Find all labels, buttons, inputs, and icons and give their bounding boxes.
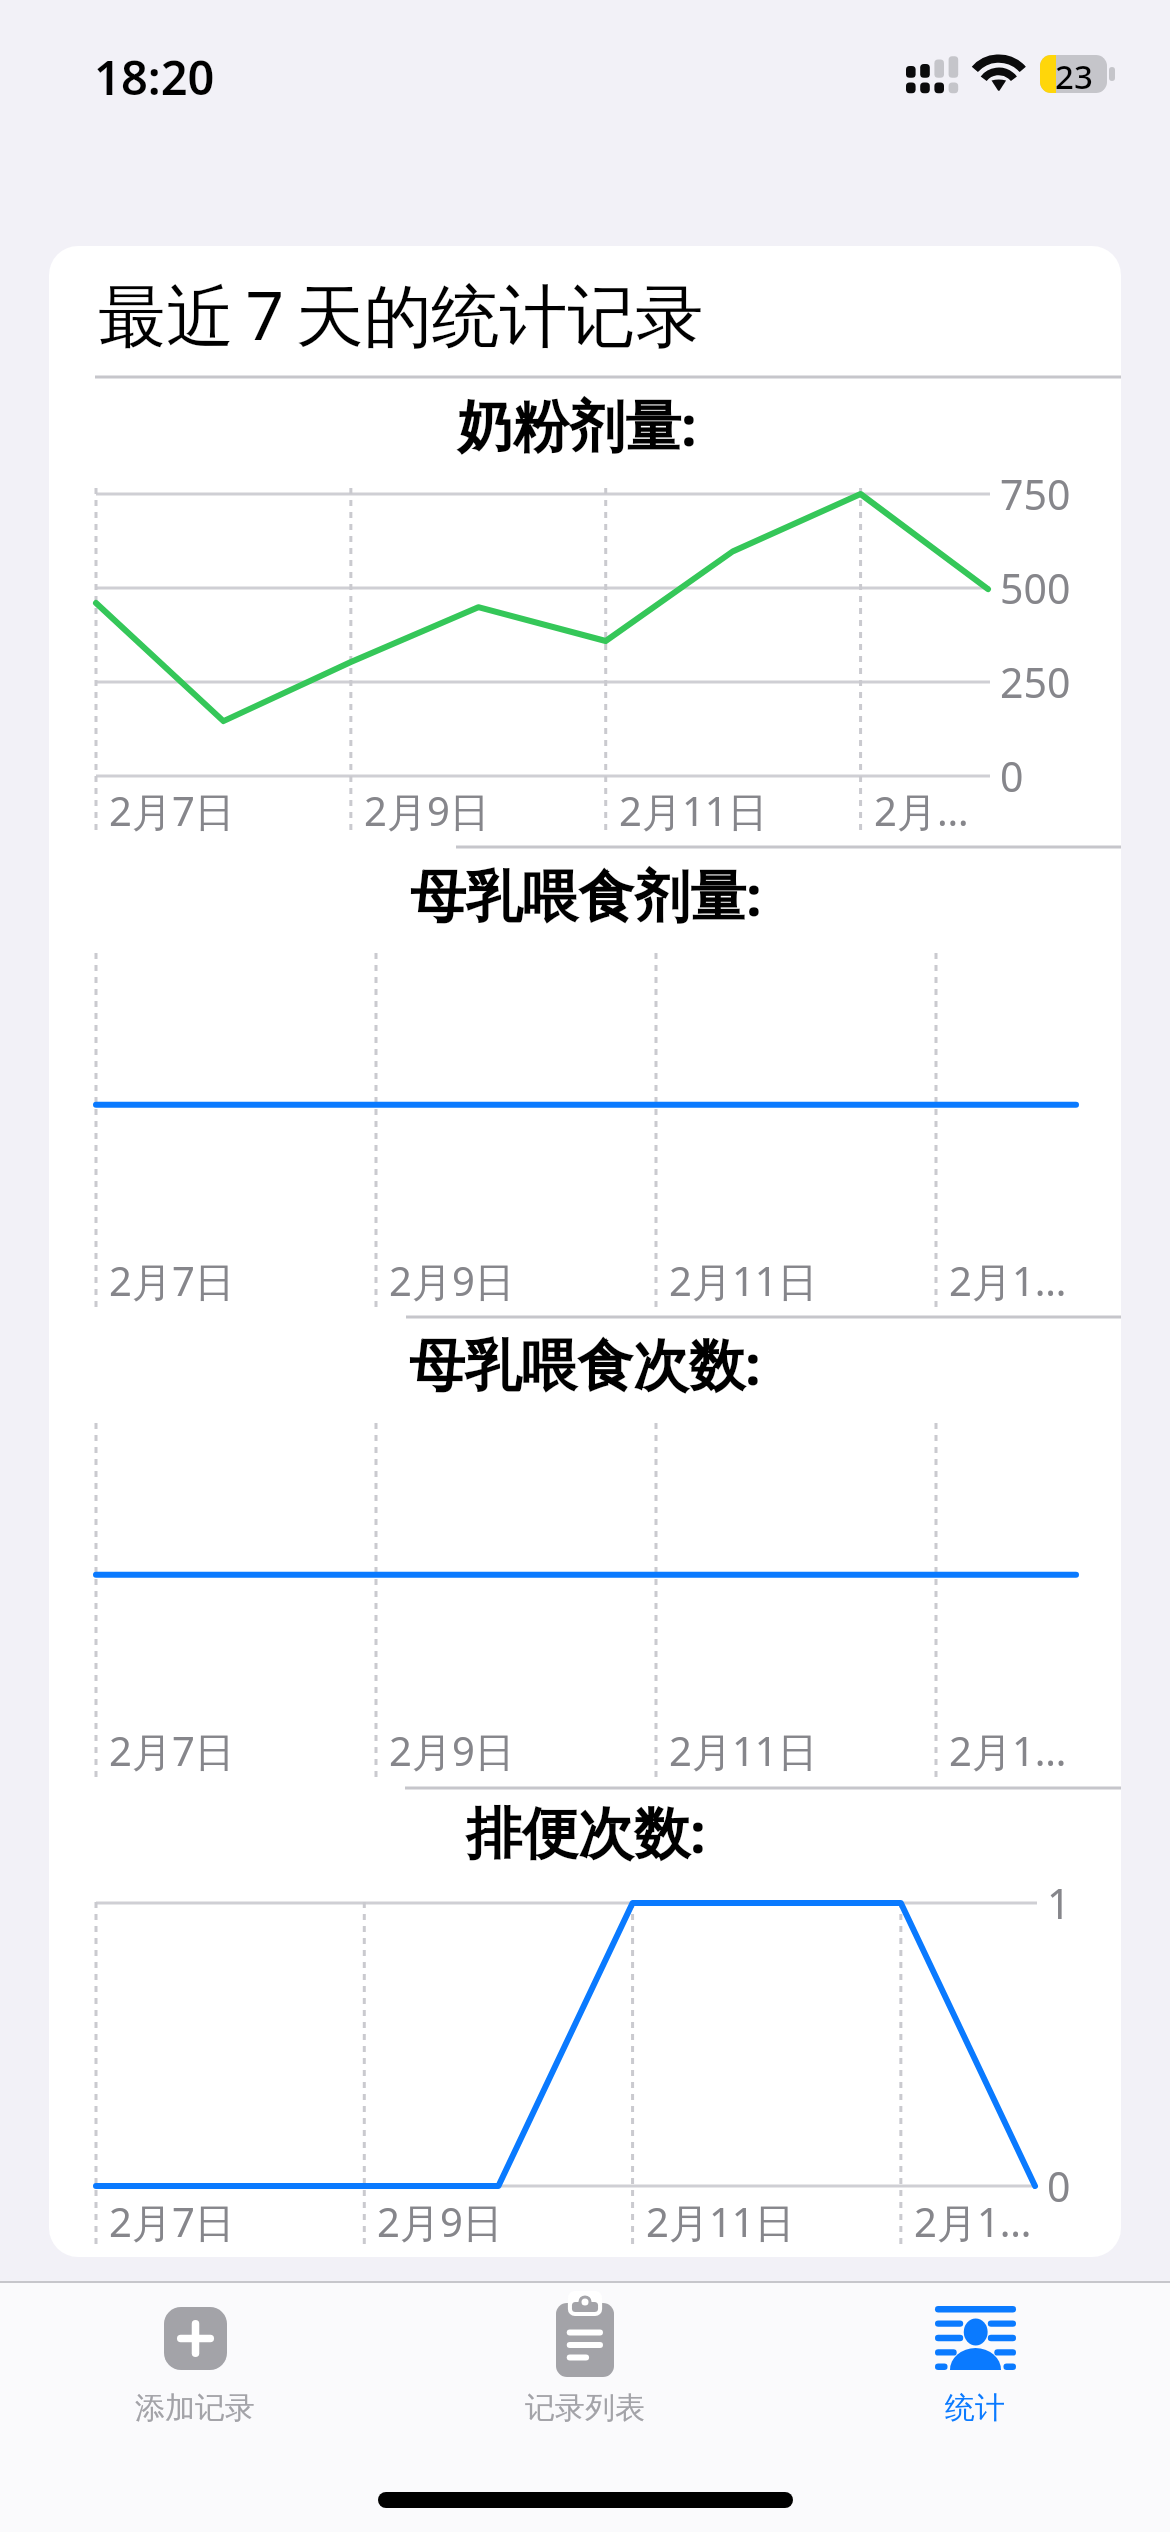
other: Statistics bbox=[935, 2306, 1016, 2370]
button[interactable]: Add record bbox=[0, 2282, 390, 2442]
staticText: 统计 bbox=[945, 2389, 1005, 2427]
staticText: 2月11日 bbox=[669, 1253, 818, 1308]
staticText: 2月11日 bbox=[646, 2194, 795, 2249]
button[interactable]: Statistics bbox=[780, 2282, 1170, 2442]
staticText: 2月7日 bbox=[109, 783, 235, 838]
staticText: 2月1… bbox=[949, 1723, 1067, 1778]
staticText: 0 bbox=[1047, 2158, 1071, 2214]
staticText: 最近 7 天的统计记录 bbox=[98, 267, 704, 360]
staticText: 记录列表 bbox=[525, 2389, 645, 2427]
staticText: 2月9日 bbox=[389, 1253, 515, 1308]
other: Record list bbox=[556, 2295, 614, 2377]
staticText: 2月11日 bbox=[669, 1723, 818, 1778]
staticText: 750 bbox=[1000, 466, 1071, 522]
staticText: 奶粉剂量: bbox=[457, 386, 697, 462]
staticText: 2月11日 bbox=[619, 783, 768, 838]
staticText: 500 bbox=[1000, 560, 1071, 616]
staticText: 母乳喂食次数: bbox=[409, 1325, 761, 1401]
staticText: 250 bbox=[1000, 654, 1071, 710]
staticText: 母乳喂食剂量: bbox=[410, 856, 762, 932]
staticText: 2月9日 bbox=[377, 2194, 503, 2249]
staticText: 2月7日 bbox=[109, 2194, 235, 2249]
staticText: 2月1… bbox=[949, 1253, 1067, 1308]
staticText: 2月9日 bbox=[389, 1723, 515, 1778]
staticText: 18:20 bbox=[94, 45, 215, 109]
staticText: 1 bbox=[1047, 1875, 1071, 1931]
staticText: 添加记录 bbox=[135, 2389, 255, 2427]
staticText: 2月7日 bbox=[109, 1253, 235, 1308]
other: Add record bbox=[164, 2307, 227, 2370]
staticText: 23 bbox=[1055, 55, 1093, 92]
staticText: 0 bbox=[1000, 748, 1024, 804]
staticText: 2月7日 bbox=[109, 1723, 235, 1778]
button[interactable]: Record list bbox=[390, 2282, 780, 2442]
staticText: 2月1… bbox=[914, 2194, 1032, 2249]
staticText: 2月… bbox=[874, 783, 969, 838]
staticText: 2月9日 bbox=[364, 783, 490, 838]
staticText: 排便次数: bbox=[466, 1793, 706, 1869]
